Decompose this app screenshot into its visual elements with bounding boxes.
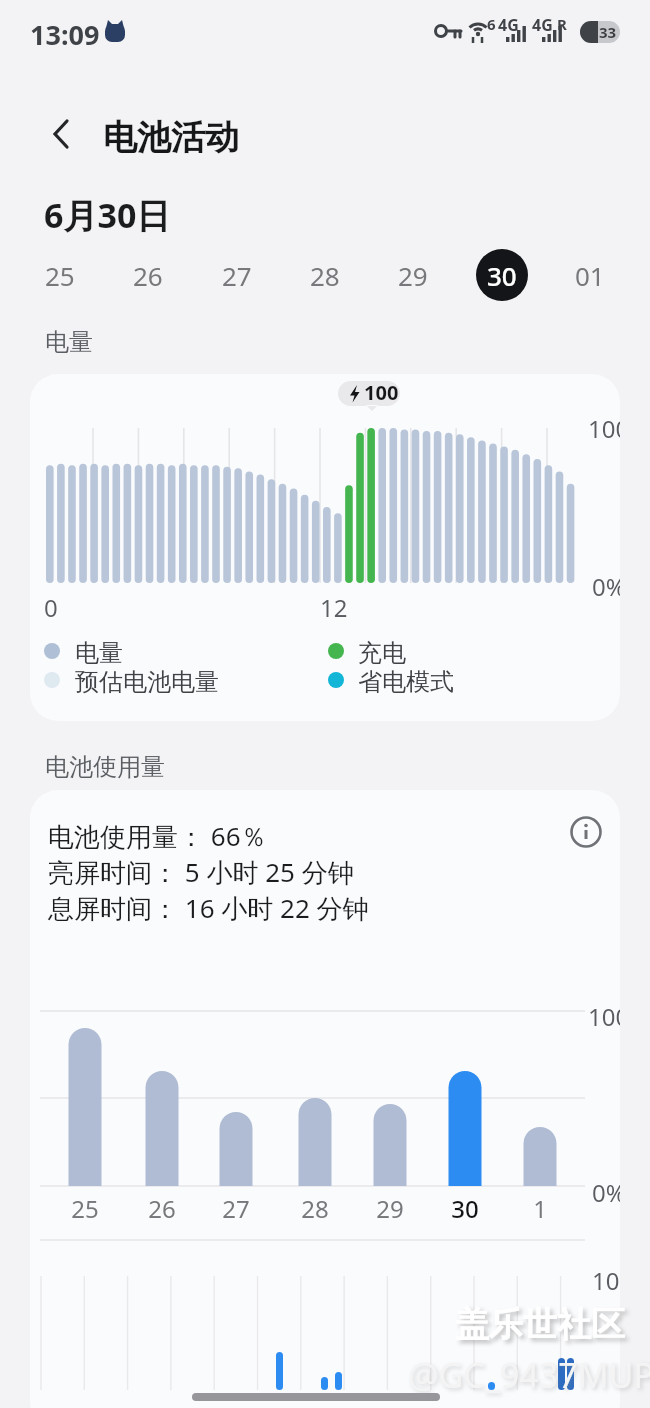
- staticText: 0%: [592, 1176, 620, 1209]
- staticText: 30: [451, 1192, 479, 1225]
- staticText: 13:09: [30, 16, 100, 53]
- button[interactable]: 27: [211, 249, 263, 301]
- staticText: 4G: [532, 14, 553, 36]
- staticText: 电量: [75, 638, 123, 668]
- staticText: 亮屏时间： 5 小时 25 分钟: [48, 854, 354, 890]
- button[interactable]: 30: [476, 249, 528, 301]
- staticText: 息屏时间： 16 小时 22 分钟: [48, 890, 369, 926]
- staticText: 28: [301, 1192, 329, 1225]
- button[interactable]: 29: [387, 249, 439, 301]
- staticText: 4G: [498, 14, 519, 36]
- staticText: 电池使用量: [45, 752, 165, 782]
- staticText: 30: [487, 258, 517, 293]
- staticText: 电池活动: [103, 116, 239, 159]
- staticText: 充电: [358, 638, 406, 668]
- staticText: 0: [44, 591, 58, 624]
- staticText: 28: [310, 258, 340, 293]
- staticText: 33: [599, 22, 617, 42]
- button[interactable]: [570, 816, 602, 848]
- button[interactable]: [40, 112, 84, 156]
- staticText: 25: [71, 1192, 99, 1225]
- staticText: 12: [320, 591, 348, 624]
- staticText: 27: [222, 1192, 250, 1225]
- staticText: 省电模式: [358, 667, 454, 697]
- button[interactable]: 28: [299, 249, 351, 301]
- staticText: 25: [45, 258, 75, 293]
- staticText: R: [557, 14, 567, 34]
- staticText: 盖乐世社区: [455, 1303, 625, 1346]
- staticText: 电量: [45, 327, 93, 357]
- staticText: 26: [148, 1192, 176, 1225]
- staticText: 1: [533, 1192, 547, 1225]
- staticText: 10: [592, 1264, 620, 1297]
- staticText: @GC_9437MUP: [408, 1352, 650, 1398]
- staticText: 27: [222, 258, 252, 293]
- staticText: 100: [588, 412, 620, 445]
- staticText: 26: [133, 258, 163, 293]
- button[interactable]: 01: [564, 249, 616, 301]
- staticText: 100: [364, 379, 399, 406]
- staticText: 100: [588, 1000, 620, 1033]
- staticText: 6: [487, 14, 496, 34]
- staticText: 预估电池电量: [75, 667, 219, 697]
- staticText: 29: [398, 258, 428, 293]
- staticText: 6月30日: [44, 192, 171, 238]
- staticText: 29: [376, 1192, 404, 1225]
- staticText: 01: [575, 258, 605, 293]
- staticText: 0%: [592, 570, 620, 603]
- button[interactable]: 26: [122, 249, 174, 301]
- staticText: 电池使用量： 66％: [48, 818, 267, 854]
- button[interactable]: 25: [34, 249, 86, 301]
